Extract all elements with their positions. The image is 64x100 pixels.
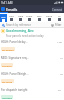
- button[interactable]: For dispatch tonight: [0, 88, 64, 100]
- button[interactable]: Risk: [34, 14, 44, 21]
- staticText: Emails: [6, 7, 18, 12]
- staticText: MED: Signature required: [1, 56, 30, 60]
- button[interactable]: Held: [16, 14, 25, 21]
- button[interactable]: Filter: [51, 23, 62, 27]
- button[interactable]: Connect: [52, 7, 63, 12]
- staticText: Held: [18, 14, 24, 17]
- staticText: Approve: [2, 96, 12, 99]
- staticText: 9:41 AM: [1, 1, 13, 5]
- staticText: Re-route: [2, 80, 13, 83]
- staticText: HIGH: Parcel delayed at hub: [1, 40, 29, 44]
- button[interactable]: Search by reference: [2, 23, 51, 27]
- staticText: Late: [9, 14, 14, 17]
- staticText: All: [58, 14, 61, 17]
- button[interactable]: All: [54, 14, 64, 21]
- button[interactable]: HIGH: Parcel delayed at hub: [0, 40, 64, 56]
- button[interactable]: Live: [0, 14, 7, 22]
- button[interactable]: Re-deliver: [2, 47, 14, 51]
- staticText: Filter: [55, 23, 62, 27]
- staticText: Risk: [37, 14, 42, 17]
- staticText: Re-deliver: [2, 48, 14, 51]
- staticText: Good morning, Alex: [6, 29, 34, 33]
- staticText: 1h: [60, 56, 63, 59]
- button[interactable]: Confirm: [2, 63, 12, 67]
- staticText: Live: [1, 15, 6, 18]
- button[interactable]: HIGH: Parcel Neighbourhood: [0, 72, 64, 88]
- staticText: 5h: [58, 88, 61, 91]
- staticText: Confirm: [2, 64, 12, 67]
- button[interactable]: Approve: [2, 95, 12, 99]
- button[interactable]: Good morning, Alex: [1, 29, 63, 38]
- button[interactable]: MED: Signature required: [0, 56, 64, 72]
- staticText: Four parcels need action today: [6, 34, 44, 38]
- button[interactable]: Re-route: [2, 79, 13, 83]
- button[interactable]: Claim: [25, 14, 34, 21]
- button[interactable]: Late: [7, 14, 16, 21]
- button[interactable]: Done: [44, 14, 54, 21]
- staticText: Search by reference: [6, 23, 31, 27]
- staticText: Claim: [26, 14, 33, 17]
- staticText: HIGH: Parcel Neighbourhood: [1, 72, 30, 76]
- staticText: For dispatch tonight: [1, 88, 28, 92]
- button[interactable]: App logo: [1, 7, 5, 11]
- staticText: Connect: [52, 8, 63, 12]
- staticText: 14m: [57, 40, 63, 43]
- staticText: 3h: [60, 72, 63, 75]
- staticText: Done: [46, 14, 53, 17]
